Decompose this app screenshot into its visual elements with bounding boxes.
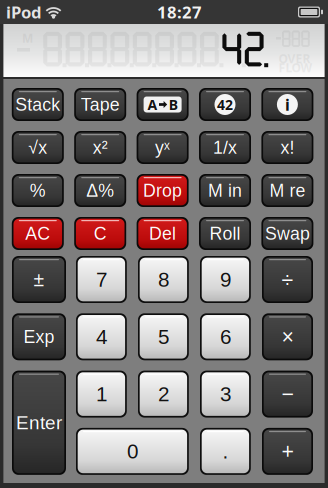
staticText: i [285, 94, 290, 115]
button[interactable]: 5 [138, 313, 189, 360]
staticText: Drop [143, 181, 182, 200]
button[interactable]: Tape [74, 88, 126, 121]
staticText: 1/x [213, 138, 237, 157]
staticText: iPod [6, 1, 42, 23]
button[interactable]: 4 [76, 313, 127, 360]
button[interactable]: x² [74, 131, 126, 164]
button[interactable]: Del [137, 217, 189, 250]
staticText: 0 [127, 440, 138, 463]
button[interactable]: AC [12, 217, 64, 250]
button[interactable]: 0 [76, 428, 189, 475]
staticText: ± [33, 269, 44, 290]
staticText: 18:27 [157, 1, 202, 23]
staticText: √x [28, 138, 47, 157]
staticText: C [94, 224, 107, 243]
button[interactable]: Info [261, 88, 313, 121]
button[interactable]: x! [261, 131, 313, 164]
staticText: 9 [220, 268, 231, 291]
button[interactable]: Δ% [74, 174, 126, 207]
staticText: 6 [220, 325, 231, 348]
button[interactable]: 9 [200, 256, 251, 303]
staticText: Del [149, 224, 176, 243]
staticText: M re [269, 181, 305, 200]
staticText: Tape [81, 95, 120, 114]
staticText: AC [25, 224, 50, 243]
button[interactable]: Roll [199, 217, 251, 250]
button[interactable]: Drop [137, 174, 189, 207]
staticText: ÷ [281, 268, 293, 291]
staticText: A [147, 95, 157, 114]
button[interactable]: Exp [12, 313, 66, 360]
staticText: × [281, 325, 293, 349]
button[interactable]: ± [12, 256, 66, 303]
button[interactable]: Swap A and B [137, 88, 189, 121]
button[interactable]: 1/x [199, 131, 251, 164]
staticText: 2 [158, 383, 169, 406]
button[interactable]: ÷ [262, 256, 313, 303]
staticText: M in [208, 181, 242, 200]
button[interactable]: C [74, 217, 126, 250]
button[interactable]: Enter [12, 371, 66, 475]
staticText: 7 [96, 268, 107, 291]
staticText: 5 [158, 325, 169, 348]
button[interactable]: % [12, 174, 64, 207]
staticText: % [30, 181, 46, 200]
staticText: 1 [96, 383, 107, 406]
staticText: Swap [265, 224, 310, 243]
staticText: x² [93, 138, 108, 157]
staticText: M [22, 30, 33, 46]
button[interactable]: 8 [138, 256, 189, 303]
staticText: 3 [220, 383, 231, 406]
staticText: 8 [158, 268, 169, 291]
staticText: Stack [15, 95, 60, 114]
staticText: x! [280, 138, 294, 157]
button[interactable]: M in [199, 174, 251, 207]
staticText: B [169, 95, 178, 114]
staticText: FLOW [278, 59, 312, 76]
button[interactable]: 2 [138, 371, 189, 418]
staticText: Roll [209, 224, 240, 243]
staticText: Enter [16, 412, 62, 433]
staticText: . [222, 440, 228, 463]
button[interactable]: M re [261, 174, 313, 207]
button[interactable]: Swap [261, 217, 313, 250]
button[interactable]: 42 [199, 88, 251, 121]
button[interactable]: √x [12, 131, 64, 164]
button[interactable]: yˣ [137, 131, 189, 164]
button[interactable]: − [262, 371, 313, 418]
staticText: + [281, 439, 293, 463]
button[interactable]: Stack [12, 88, 64, 121]
staticText: yˣ [155, 138, 170, 157]
button[interactable]: × [262, 313, 313, 360]
button[interactable]: 1 [76, 371, 127, 418]
button[interactable]: 7 [76, 256, 127, 303]
button[interactable]: 3 [200, 371, 251, 418]
staticText: − [281, 382, 293, 406]
staticText: 42 [217, 95, 233, 114]
button[interactable]: 6 [200, 313, 251, 360]
staticText: Δ% [86, 181, 114, 200]
staticText: OVER [278, 50, 310, 67]
staticText: Exp [23, 327, 54, 347]
button[interactable]: . [200, 428, 251, 475]
button[interactable]: + [262, 428, 313, 475]
staticText: 4 [96, 325, 107, 348]
